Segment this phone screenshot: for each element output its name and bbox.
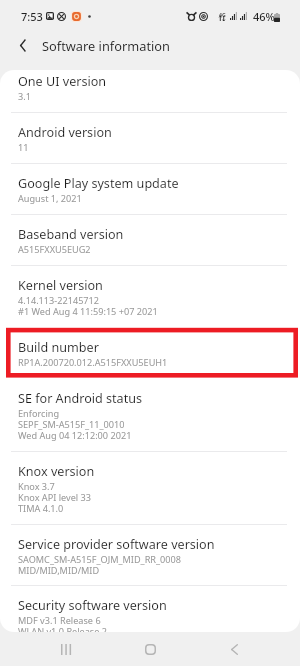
staticText: August 1, 2021: [18, 192, 82, 204]
button[interactable]: Google Play system update: [0, 164, 300, 215]
staticText: One UI version: [18, 73, 107, 90]
button[interactable]: Knox version: [0, 452, 300, 525]
button[interactable]: Navigate up: [0, 33, 42, 70]
staticText: 46%: [253, 9, 275, 24]
button[interactable]: Security software version: [0, 586, 300, 632]
staticText: Knox version: [18, 463, 95, 480]
staticText: MDF v3.1 Release 6 WLAN v1.0 Release 2: [18, 614, 108, 632]
button[interactable]: One UI version: [0, 70, 300, 113]
staticText: 4.14.113-22145712 #1 Wed Aug 4 11:59:15 …: [18, 294, 158, 317]
button[interactable]: Back: [213, 632, 255, 666]
staticText: Software information: [42, 37, 170, 54]
staticText: Android version: [18, 124, 112, 141]
staticText: 3.1: [18, 90, 31, 102]
staticText: 4G: [219, 11, 226, 18]
button[interactable]: Kernel version: [0, 266, 300, 328]
staticText: Knox 3.7 Knox API level 33 TIMA 4.1.0: [18, 480, 92, 514]
staticText: Kernel version: [18, 277, 103, 294]
staticText: 11: [18, 141, 29, 153]
staticText: SE for Android status: [18, 390, 143, 407]
staticText: Build number: [18, 339, 99, 356]
staticText: Security software version: [18, 597, 167, 614]
staticText: Enforcing SEPF_SM-A515F_11_0010 Wed Aug …: [18, 407, 132, 441]
button[interactable]: Baseband version: [0, 215, 300, 266]
button[interactable]: Home: [129, 632, 171, 666]
button[interactable]: Android version: [0, 113, 300, 164]
staticText: Service provider software version: [18, 536, 215, 553]
button[interactable]: Build number: [0, 328, 300, 379]
staticText: RP1A.200720.012.A515FXXU5EUH1: [18, 356, 168, 368]
staticText: Baseband version: [18, 226, 124, 243]
button[interactable]: Service provider software version: [0, 525, 300, 586]
staticText: Google Play system update: [18, 175, 179, 192]
staticText: A515FXXU5EUG2: [18, 243, 91, 255]
staticText: 7:53: [21, 9, 43, 24]
button[interactable]: Recent apps: [45, 632, 87, 666]
button[interactable]: SE for Android status: [0, 379, 300, 452]
staticText: SAOMC_SM-A515F_OJM_MID_RR_0008 MID/MID,M…: [18, 553, 181, 576]
